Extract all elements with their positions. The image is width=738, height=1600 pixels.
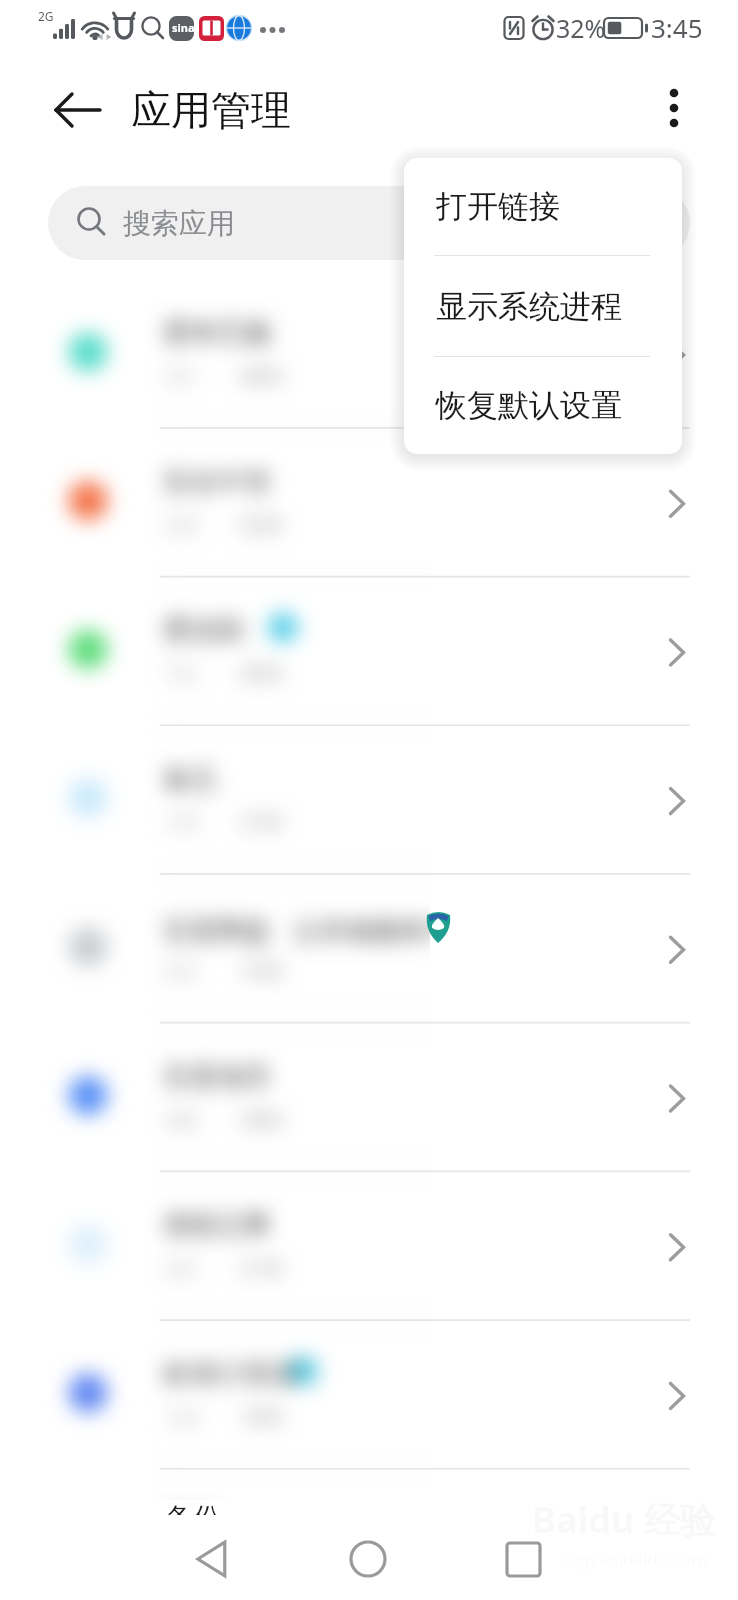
staticText: 1.4 18M (166, 1403, 283, 1432)
button[interactable]: 搜索应用 (48, 186, 690, 260)
staticText: 32% (556, 11, 606, 45)
button[interactable]: Back (40, 72, 116, 148)
staticText: 5.2 72M (166, 957, 283, 986)
staticText: 标准计算器 (163, 1357, 298, 1391)
staticText: 打开链接 (436, 187, 560, 226)
staticText: 2G (38, 8, 54, 24)
button[interactable]: 打开链接 (404, 158, 682, 255)
staticText: 备忘 (163, 762, 217, 796)
staticText: 3:45 (651, 10, 703, 45)
staticText: 安全中管 (163, 465, 271, 499)
staticText: 显示系统进程 (436, 287, 622, 326)
button[interactable]: 恢复默认设置 (404, 357, 682, 454)
staticText: 7.2 46M (166, 659, 283, 688)
staticText: Baidu 经验 (532, 1495, 716, 1544)
staticText: 爱奇艺频 (163, 316, 271, 350)
staticText: 应用管理 (131, 85, 291, 135)
staticText: 百度地导 (163, 1060, 271, 1094)
button[interactable]: Home (333, 1518, 403, 1600)
staticText: 便签记事 (163, 1208, 271, 1242)
staticText: 3.1 48M (166, 362, 283, 391)
staticText: 1.0 31M (166, 808, 283, 837)
button[interactable]: Recents (488, 1518, 558, 1600)
button[interactable]: Back (178, 1518, 248, 1600)
staticText: 2.0 92M (166, 511, 283, 540)
button[interactable]: More options (642, 78, 706, 142)
staticText: 4.8 28M (166, 1106, 283, 1135)
staticText: 恢复默认设置 (436, 386, 622, 425)
staticText: sina (172, 20, 195, 35)
staticText: 2.2 21M (166, 1254, 283, 1283)
staticText: 百度网盘 云存储服务中心管理 (163, 911, 430, 948)
staticText: 备份 (166, 1505, 220, 1515)
staticText: 搜索应用 (123, 206, 235, 241)
button[interactable]: 显示系统进程 (404, 256, 682, 356)
staticText: 爱说助 (163, 613, 244, 647)
